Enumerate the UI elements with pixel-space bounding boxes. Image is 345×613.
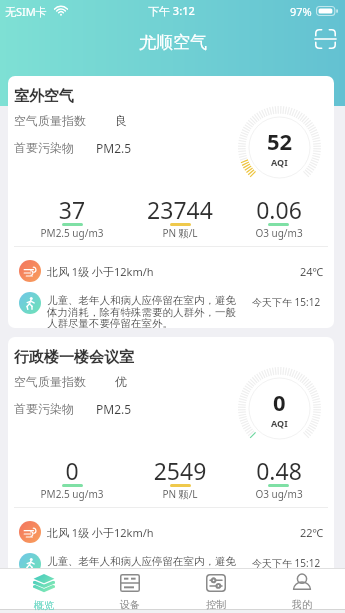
button[interactable]: 扫一扫	[314, 28, 336, 49]
staticText: 23744	[120, 194, 240, 225]
staticText: 行政楼一楼会议室	[14, 348, 134, 367]
staticText: 优	[115, 374, 127, 389]
staticText: AQI	[271, 417, 288, 429]
staticText: 37	[12, 194, 132, 225]
staticText: PN 颗/L	[120, 226, 240, 240]
staticText: PM2.5 ug/m3	[12, 226, 132, 240]
button[interactable]: 概览	[0, 568, 87, 613]
staticText: 无SIM卡	[5, 4, 47, 19]
staticText: 北风 1级 小于12km/h	[47, 264, 154, 279]
staticText: 下午 3:12	[148, 3, 195, 18]
staticText: 儿童、老年人和病人应停留在室内，避免体力消耗，除有特殊需要的人群外，一般人群尽量…	[47, 294, 239, 328]
staticText: PM2.5	[96, 401, 132, 417]
staticText: 24℃	[300, 264, 324, 279]
staticText: 今天下午 15:12	[252, 295, 321, 309]
staticText: 儿童、老年人和病人应停留在室内，避免体力消耗，除有特殊需要的人群外，一般人群尽量…	[47, 555, 239, 589]
staticText: O3 ug/m3	[219, 226, 334, 240]
staticText: AQI	[271, 156, 288, 168]
staticText: 今天下午 15:12	[252, 556, 321, 570]
button[interactable]: 我的	[259, 568, 345, 613]
button[interactable]: 0	[8, 337, 334, 589]
staticText: 97%	[290, 4, 312, 19]
staticText: O3 ug/m3	[219, 487, 334, 501]
staticText: 控制	[206, 598, 226, 611]
staticText: 首要污染物	[14, 401, 74, 416]
button[interactable]: 设备	[87, 568, 173, 613]
staticText: PN 颗/L	[120, 487, 240, 501]
button[interactable]: 控制	[173, 568, 259, 613]
button[interactable]: 52	[8, 76, 334, 328]
staticText: 22℃	[300, 525, 324, 540]
staticText: 我的	[292, 598, 312, 611]
staticText: 首要污染物	[14, 140, 74, 155]
staticText: 尤顺空气	[139, 32, 207, 53]
staticText: PM2.5	[96, 140, 132, 156]
staticText: 北风 1级 小于12km/h	[47, 525, 154, 540]
staticText: 2549	[120, 455, 240, 486]
staticText: 室外空气	[14, 87, 74, 106]
staticText: 概览	[34, 599, 54, 612]
staticText: PM2.5 ug/m3	[12, 487, 132, 501]
staticText: 良	[115, 113, 127, 128]
staticText: 空气质量指数	[14, 374, 86, 389]
staticText: 0.06	[219, 194, 334, 225]
staticText: 空气质量指数	[14, 113, 86, 128]
staticText: 0	[12, 455, 132, 486]
staticText: 0.48	[219, 455, 334, 486]
staticText: 设备	[120, 598, 140, 611]
staticText: 0	[273, 387, 286, 417]
staticText: 52	[267, 126, 293, 156]
